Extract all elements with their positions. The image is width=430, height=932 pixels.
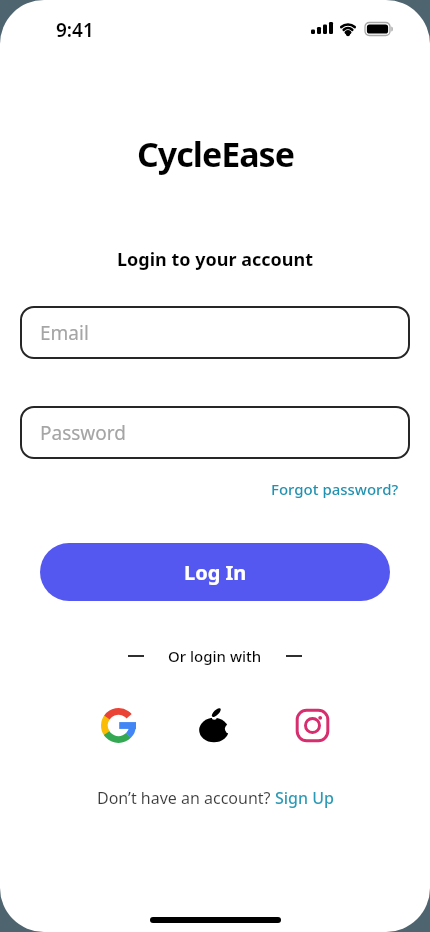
button[interactable]: Don’t have an account? bbox=[97, 787, 334, 809]
button[interactable] bbox=[193, 703, 237, 747]
staticText: Login to your account bbox=[117, 247, 313, 272]
button[interactable]: Log In bbox=[40, 543, 390, 601]
staticText: Sign Up bbox=[275, 787, 334, 809]
button[interactable]: Password bbox=[20, 406, 410, 459]
staticText: Password bbox=[40, 420, 126, 446]
staticText: 9:41 bbox=[56, 17, 94, 43]
button[interactable] bbox=[96, 703, 140, 747]
staticText: Email bbox=[40, 320, 89, 346]
staticText: Log In bbox=[184, 559, 247, 586]
button[interactable]: Forgot password? bbox=[271, 479, 399, 499]
staticText: Don’t have an account? bbox=[97, 787, 275, 809]
staticText: CycleEase bbox=[137, 131, 294, 177]
button[interactable] bbox=[290, 703, 334, 747]
button[interactable]: Email bbox=[20, 306, 410, 359]
staticText: Or login with bbox=[168, 646, 262, 666]
